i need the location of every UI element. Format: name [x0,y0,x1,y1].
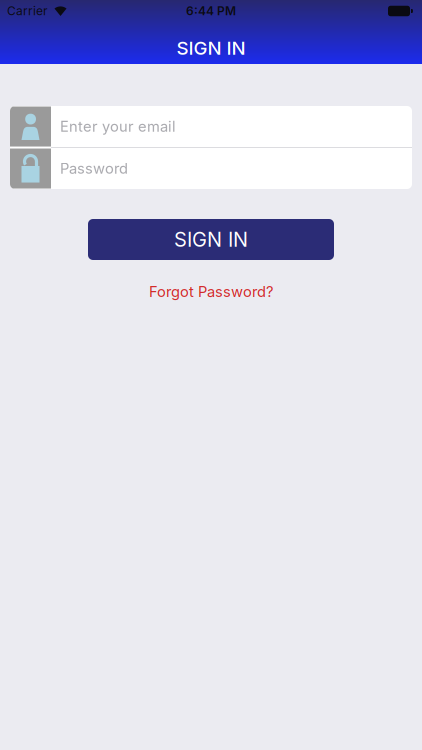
staticText: Enter your email [60,118,176,135]
textField[interactable] [60,118,412,135]
staticText: Password [60,160,128,177]
staticText: Forgot Password? [149,283,273,300]
staticText: SIGN IN [174,228,248,251]
staticText: Carrier [7,4,48,18]
button[interactable]: Forgot Password? [149,283,273,300]
staticText: SIGN IN [176,37,245,59]
textField[interactable] [60,160,412,177]
button[interactable]: SIGN IN [88,219,334,260]
staticText: 6:44 PM [186,4,236,18]
